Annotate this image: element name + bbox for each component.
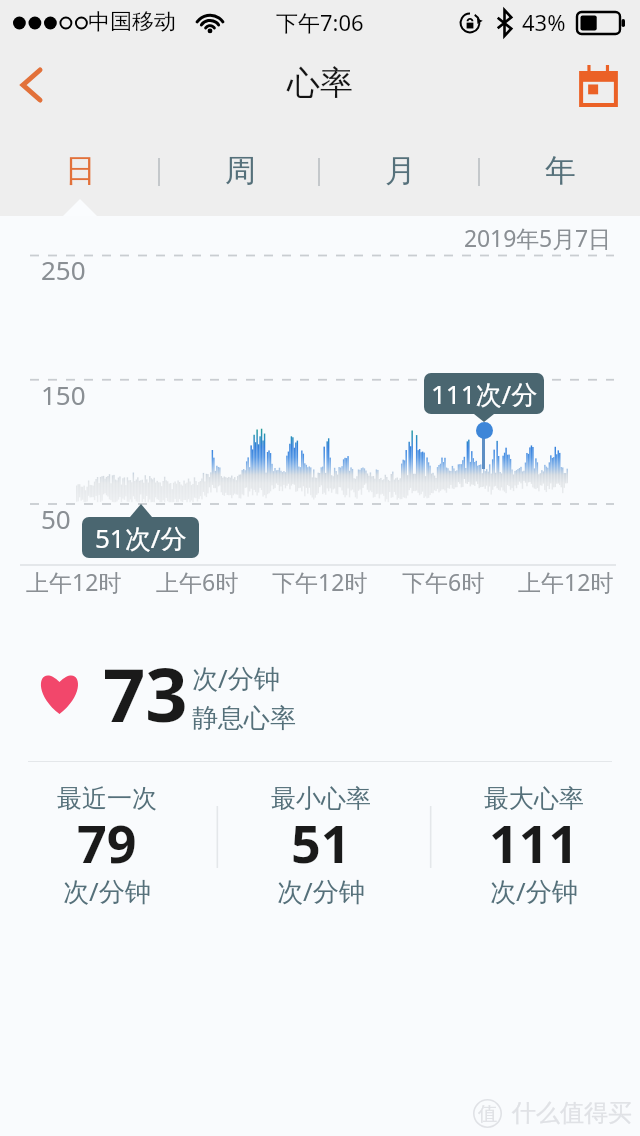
staticText: 2019年5月7日 — [464, 222, 612, 253]
staticText: 51次/分 — [95, 520, 187, 556]
staticText: 上午12时 — [26, 566, 122, 597]
button[interactable]: Calendar — [574, 61, 622, 109]
button[interactable]: 111次/分 — [424, 373, 544, 414]
staticText: 次/分钟 — [192, 660, 280, 696]
staticText: 次/分钟 — [63, 873, 151, 909]
button[interactable]: 年 — [480, 124, 640, 216]
staticText: 值 — [478, 1102, 497, 1126]
staticText: 最小心率 — [271, 783, 371, 814]
staticText: 150 — [41, 377, 86, 412]
staticText: 年 — [545, 151, 576, 190]
button[interactable]: 日 — [0, 124, 160, 216]
button[interactable]: 最小心率 — [214, 762, 427, 942]
staticText: 下午6时 — [402, 566, 485, 597]
button[interactable]: 最近一次 — [0, 762, 214, 942]
button[interactable]: 51次/分 — [82, 517, 199, 558]
button[interactable]: 月 — [320, 124, 480, 216]
staticText: 上午6时 — [156, 566, 239, 597]
staticText: 中国移动 — [88, 8, 176, 36]
staticText: 月 — [385, 151, 416, 190]
staticText: 111 — [489, 807, 579, 878]
staticText: 周 — [225, 151, 256, 190]
staticText: 日 — [65, 151, 96, 190]
staticText: 什么值得买 — [512, 1098, 632, 1128]
staticText: 最大心率 — [484, 783, 584, 814]
button[interactable]: 73 — [38, 643, 296, 744]
staticText: 50 — [41, 501, 71, 536]
staticText: 43% — [522, 7, 566, 37]
staticText: 下午12时 — [272, 566, 368, 597]
staticText: 79 — [77, 807, 137, 878]
staticText: 次/分钟 — [490, 873, 578, 909]
staticText: 心率 — [287, 62, 353, 104]
staticText: 111次/分 — [431, 376, 538, 412]
staticText: 静息心率 — [192, 702, 296, 735]
staticText: 73 — [103, 643, 188, 744]
staticText: 上午12时 — [518, 566, 614, 597]
button[interactable]: Back — [5, 59, 57, 111]
button[interactable]: 周 — [160, 124, 320, 216]
staticText: 次/分钟 — [277, 873, 365, 909]
button[interactable]: 最大心率 — [427, 762, 640, 942]
staticText: 250 — [41, 252, 86, 287]
staticText: 最近一次 — [57, 783, 157, 814]
staticText: 下午7:06 — [276, 7, 364, 37]
staticText: 51 — [291, 807, 351, 878]
